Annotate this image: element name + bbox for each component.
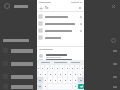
button[interactable]: Key (43, 84, 47, 89)
button[interactable]: Key (63, 71, 67, 77)
button[interactable]: Menu (3, 2, 11, 10)
button[interactable]: Backspace (78, 77, 84, 83)
button[interactable]: Key (73, 77, 77, 83)
button[interactable] (71, 62, 80, 63)
button[interactable]: Key (37, 65, 40, 71)
button[interactable]: Key (53, 77, 57, 83)
button[interactable]: Back (37, 4, 84, 11)
button[interactable]: Key (55, 65, 59, 71)
button[interactable]: Key (78, 71, 82, 77)
button[interactable] (37, 20, 84, 27)
button[interactable]: More options (109, 2, 117, 10)
button[interactable]: Key (73, 71, 77, 77)
button[interactable] (37, 52, 84, 59)
button[interactable]: Key (73, 84, 77, 89)
button[interactable] (0, 57, 120, 70)
button[interactable]: Key (70, 65, 74, 71)
button[interactable] (37, 27, 84, 34)
button[interactable]: Key (63, 77, 67, 83)
button[interactable]: Key (39, 71, 42, 77)
button[interactable] (37, 34, 84, 41)
other: Clear (78, 6, 82, 10)
button[interactable]: Key (80, 65, 84, 71)
button[interactable] (0, 44, 120, 57)
button[interactable] (0, 70, 120, 83)
button[interactable]: Symbols (37, 84, 42, 89)
button[interactable]: Key (44, 77, 47, 83)
other: Back (39, 6, 43, 10)
button[interactable]: Key (68, 71, 72, 77)
button[interactable]: Key (75, 65, 79, 71)
button[interactable]: Key (58, 71, 62, 77)
staticText: To (45, 6, 49, 10)
button[interactable]: Enter (78, 84, 84, 89)
button[interactable]: Key (48, 71, 52, 77)
button[interactable]: Key (60, 65, 64, 71)
button[interactable] (37, 13, 84, 20)
button[interactable] (37, 59, 84, 60)
button[interactable] (0, 83, 120, 90)
button[interactable]: Expand (110, 37, 117, 44)
button[interactable]: Shift (37, 77, 43, 83)
button[interactable]: Key (50, 65, 54, 71)
button[interactable]: Key (45, 65, 49, 71)
button[interactable]: Key (65, 65, 69, 71)
button[interactable]: Key (68, 77, 72, 83)
button[interactable] (41, 62, 50, 63)
button[interactable]: Key (43, 71, 47, 77)
button[interactable]: Key (41, 65, 44, 71)
button[interactable]: Key (48, 77, 52, 83)
button[interactable]: Key (53, 71, 57, 77)
button[interactable]: Key (58, 77, 62, 83)
